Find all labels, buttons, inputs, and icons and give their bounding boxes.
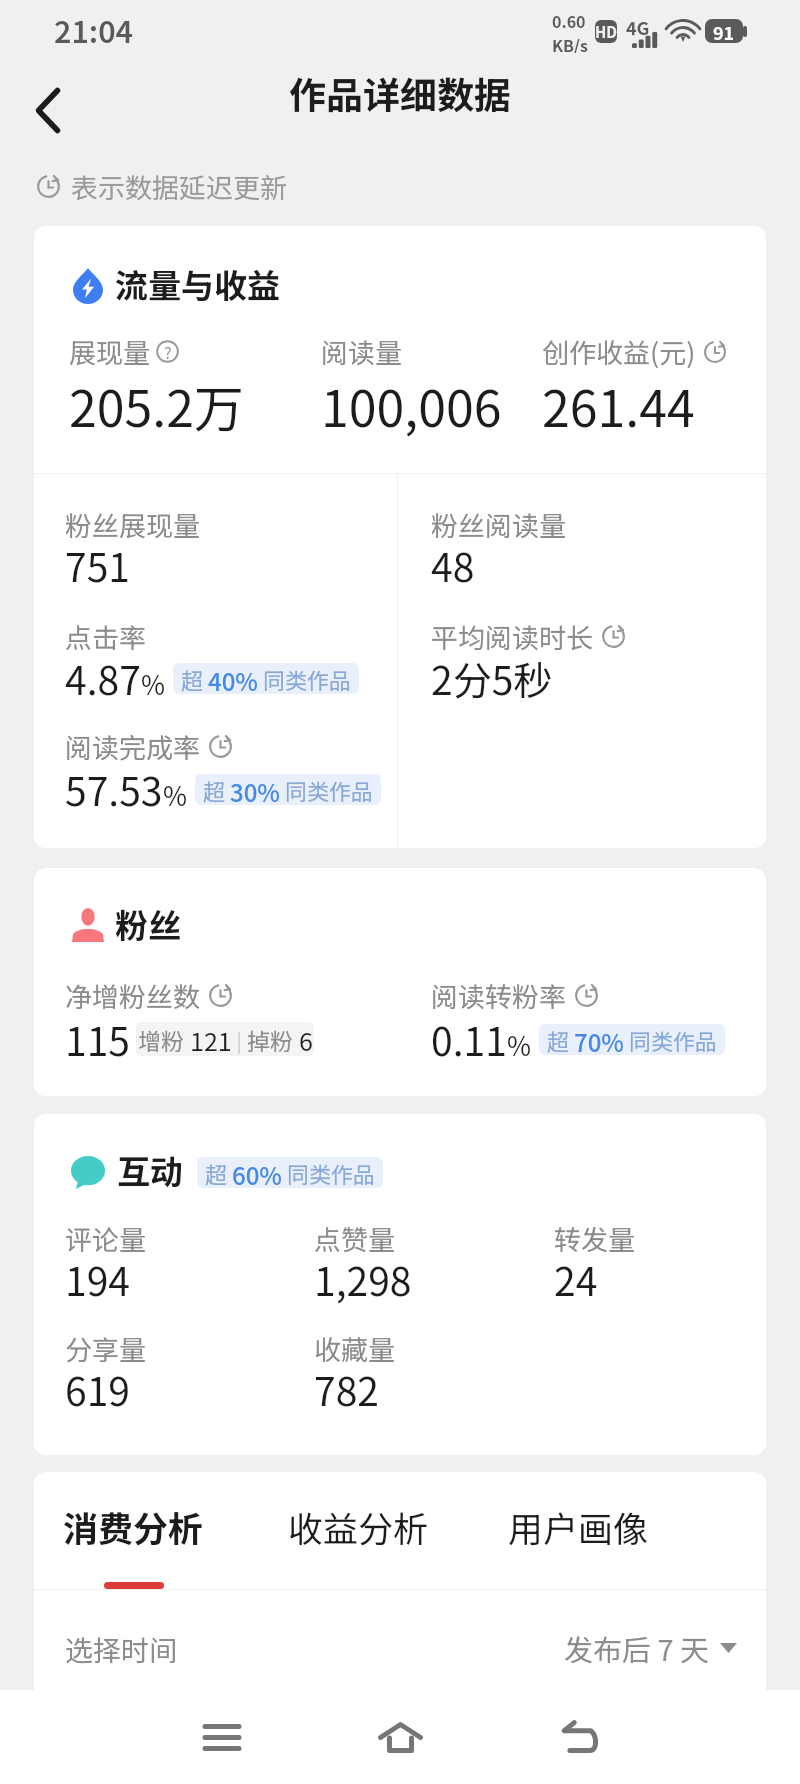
button[interactable]: 发布后 7 天 [564, 1627, 737, 1669]
staticText: 展现量 [69, 332, 150, 371]
staticText: 205.2万 [69, 369, 244, 441]
staticText: 57.53 [65, 761, 163, 817]
staticText: 增粉 [138, 1023, 190, 1056]
button[interactable]: Back [532, 1690, 628, 1784]
button[interactable]: Home [352, 1690, 448, 1784]
staticText: 点赞量 [314, 1219, 395, 1258]
staticText: KB/s [552, 33, 588, 53]
button[interactable]: 用户画像 [508, 1472, 698, 1590]
staticText: 48 [431, 537, 475, 593]
staticText: 21:04 [54, 8, 133, 51]
staticText: 发布后 7 天 [564, 1627, 710, 1669]
staticText: 互动 [117, 1146, 183, 1194]
staticText: 40% [208, 663, 258, 694]
staticText: 超 [205, 1157, 232, 1188]
staticText: 超 [547, 1024, 574, 1055]
staticText: 60% [232, 1157, 282, 1188]
staticText: ? [164, 340, 172, 363]
staticText: 70% [574, 1024, 624, 1055]
staticText: 4G [626, 14, 650, 40]
staticText: 选择时间 [65, 1629, 178, 1670]
staticText: 同类作品 [258, 663, 351, 694]
staticText: 6 [299, 1022, 313, 1056]
staticText: 平均阅读时长 [431, 617, 593, 656]
staticText: HD [595, 21, 617, 43]
staticText: 1,298 [314, 1251, 412, 1307]
staticText: 115 [65, 1011, 130, 1067]
staticText: 同类作品 [280, 774, 373, 805]
button[interactable]: Back [12, 70, 84, 150]
button[interactable]: 消费分析 [63, 1472, 253, 1590]
staticText: 782 [314, 1361, 379, 1417]
staticText: 100,006 [321, 369, 502, 441]
staticText: 粉丝展现量 [65, 505, 200, 544]
staticText: 751 [65, 537, 130, 593]
staticText: 619 [65, 1361, 130, 1417]
staticText: 掉粉 [247, 1023, 299, 1056]
staticText: 194 [65, 1251, 130, 1307]
staticText: % [507, 1026, 531, 1064]
staticText: % [163, 776, 187, 814]
button[interactable]: Recent apps [174, 1690, 270, 1784]
staticText: 粉丝 [115, 900, 181, 948]
staticText: 净增粉丝数 [65, 976, 200, 1015]
staticText: 121 [190, 1022, 232, 1056]
staticText: 收藏量 [314, 1329, 395, 1368]
staticText: 2分5秒 [431, 650, 553, 706]
staticText: 阅读转粉率 [431, 976, 566, 1015]
staticText: 4.87 [65, 650, 141, 706]
staticText: 点击率 [65, 617, 146, 656]
staticText: 评论量 [65, 1219, 146, 1258]
staticText: 同类作品 [282, 1157, 375, 1188]
staticText: 分享量 [65, 1329, 146, 1368]
staticText: 超 [203, 774, 230, 805]
staticText: 超 [181, 663, 208, 694]
staticText: 转发量 [554, 1219, 635, 1258]
staticText: 30% [230, 774, 280, 805]
staticText: 创作收益(元) [542, 332, 696, 371]
staticText: 阅读完成率 [65, 727, 200, 766]
staticText: 同类作品 [624, 1024, 717, 1055]
staticText: 91 [713, 19, 735, 43]
staticText: 消费分析 [63, 1501, 204, 1552]
staticText: 24 [554, 1251, 598, 1307]
staticText: 261.44 [542, 369, 695, 441]
staticText: 粉丝阅读量 [431, 505, 566, 544]
staticText: 0.11 [431, 1011, 507, 1067]
staticText: | [232, 1025, 247, 1054]
staticText: 作品详细数据 [289, 66, 511, 120]
staticText: 流量与收益 [115, 260, 280, 308]
staticText: 收益分析 [288, 1501, 429, 1552]
staticText: % [141, 665, 165, 703]
staticText: 阅读量 [321, 332, 402, 371]
staticText: 表示数据延迟更新 [71, 167, 287, 206]
staticText: 0.60 [552, 9, 586, 32]
staticText: 用户画像 [508, 1501, 649, 1552]
button[interactable]: 收益分析 [288, 1472, 478, 1590]
